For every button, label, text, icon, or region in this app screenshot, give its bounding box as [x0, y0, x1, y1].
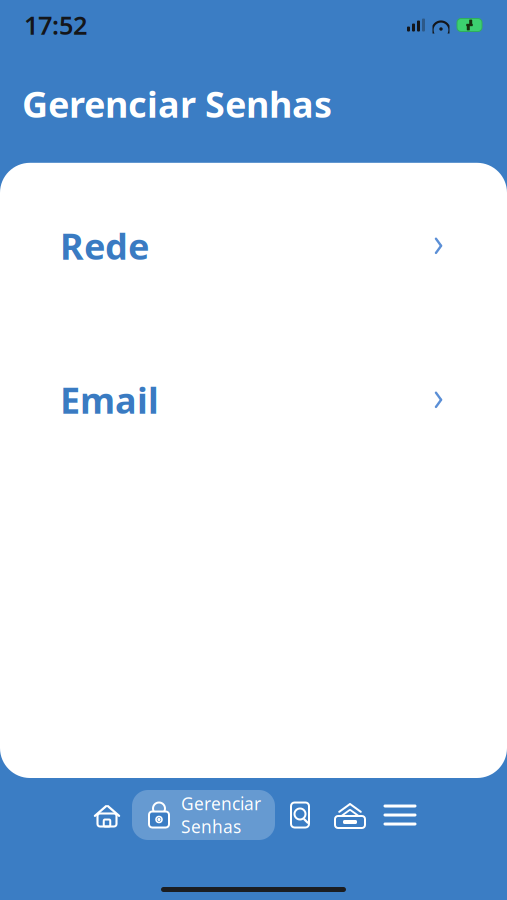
staticText: Gerenciar	[181, 792, 261, 815]
staticText: Gerenciar Senhas	[22, 80, 332, 128]
button[interactable]: Imóveis	[325, 790, 375, 840]
staticText: Rede	[60, 222, 149, 270]
button[interactable]: Buscar dispositivo	[275, 790, 325, 840]
button[interactable]: Email	[22, 347, 485, 453]
button[interactable]: Menu	[375, 790, 425, 840]
button[interactable]: Início	[82, 790, 132, 840]
button[interactable]: Rede	[22, 193, 485, 299]
staticText: Senhas	[181, 815, 241, 838]
button[interactable]: Gerenciar	[132, 790, 275, 840]
staticText: Email	[60, 376, 159, 424]
staticText: 17:52	[24, 8, 87, 42]
